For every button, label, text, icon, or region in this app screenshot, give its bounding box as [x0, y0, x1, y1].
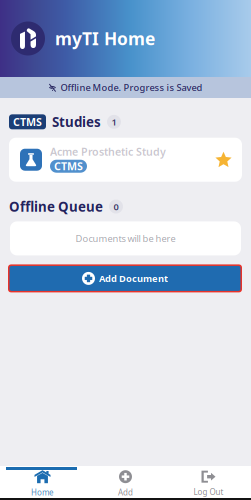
staticText: CTMS	[54, 159, 83, 173]
staticText: Add Document	[99, 272, 168, 285]
staticText: Offline Queue	[9, 198, 103, 215]
button[interactable]: Home	[1, 470, 84, 498]
button[interactable]: Add	[84, 470, 167, 498]
staticText: Home	[31, 487, 54, 498]
staticText: Acme Prosthetic Study	[50, 145, 166, 159]
staticText: CTMS	[13, 115, 42, 129]
staticText: 1	[111, 116, 116, 128]
staticText: Log Out	[193, 487, 223, 497]
button[interactable]: Add Document	[8, 264, 242, 292]
button[interactable]: Log Out	[167, 470, 250, 498]
staticText: Offline Mode. Progress is Saved	[60, 81, 202, 94]
staticText: Studies	[52, 113, 101, 131]
staticText: 0	[113, 200, 118, 213]
staticText: myTI Home	[55, 27, 155, 50]
staticText: Add	[118, 487, 133, 498]
staticText: Documents will be here	[75, 232, 175, 245]
